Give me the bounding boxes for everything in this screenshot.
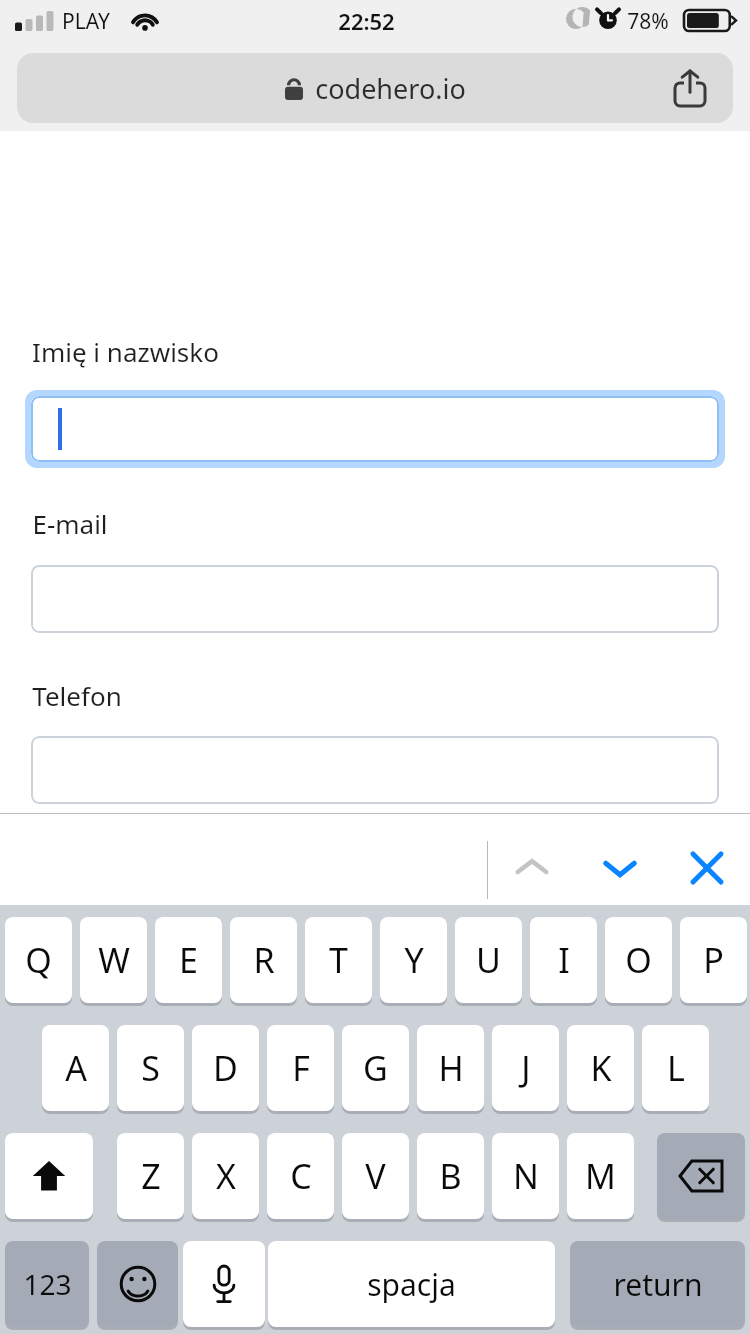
button[interactable]: G (342, 1025, 409, 1111)
staticText: Q (25, 937, 52, 983)
button[interactable]: spacja (268, 1241, 555, 1327)
staticText: Imię i nazwisko (32, 334, 219, 369)
staticText: I (558, 937, 570, 983)
staticText: L (667, 1045, 685, 1091)
button[interactable]: P (680, 917, 747, 1003)
button[interactable]: Emoji (97, 1241, 178, 1327)
button[interactable] (31, 565, 719, 633)
button[interactable] (31, 736, 719, 804)
button[interactable]: Next field (586, 834, 654, 902)
staticText: C (290, 1153, 312, 1199)
staticText: Z (141, 1153, 161, 1199)
staticText: 78% (627, 7, 669, 36)
button[interactable]: U (455, 917, 522, 1003)
button[interactable]: S (117, 1025, 184, 1111)
staticText: 123 (23, 1265, 72, 1303)
staticText: K (590, 1045, 612, 1091)
button[interactable] (31, 908, 719, 976)
button[interactable]: I (530, 917, 597, 1003)
staticText: R (253, 937, 275, 983)
staticText: F (292, 1045, 310, 1091)
staticText: 22:52 (338, 6, 395, 36)
button[interactable]: X (192, 1133, 259, 1219)
staticText: codehero.io (315, 70, 466, 107)
staticText: PLAY (62, 7, 110, 36)
button[interactable]: C (267, 1133, 334, 1219)
button[interactable]: W (80, 917, 147, 1003)
staticText: O (625, 937, 652, 983)
button[interactable]: A (42, 1025, 109, 1111)
button[interactable]: M (567, 1133, 634, 1219)
button[interactable]: Y (380, 917, 447, 1003)
button[interactable]: V (342, 1133, 409, 1219)
button[interactable]: T (305, 917, 372, 1003)
staticText: W (98, 937, 130, 983)
staticText: P (703, 937, 724, 983)
staticText: Telefon (32, 678, 122, 713)
staticText: return (613, 1264, 703, 1305)
staticText: V (365, 1153, 386, 1199)
button[interactable]: Dictation (183, 1241, 265, 1327)
button[interactable]: L (642, 1025, 709, 1111)
button[interactable]: O (605, 917, 672, 1003)
button[interactable]: K (567, 1025, 634, 1111)
button[interactable]: Share (659, 57, 721, 119)
staticText: B (439, 1153, 462, 1199)
staticText: E (179, 937, 198, 983)
button[interactable]: H (417, 1025, 484, 1111)
staticText: D (213, 1045, 238, 1091)
button[interactable]: B (417, 1133, 484, 1219)
staticText: A (65, 1045, 87, 1091)
button[interactable]: Z (117, 1133, 184, 1219)
staticText: N (513, 1153, 539, 1199)
staticText: M (585, 1153, 616, 1199)
button[interactable]: Q (5, 917, 72, 1003)
button[interactable]: Dismiss keyboard (673, 834, 741, 902)
staticText: T (329, 937, 348, 983)
staticText: E-mail (32, 506, 108, 541)
button[interactable]: R (230, 917, 297, 1003)
button[interactable]: E (155, 917, 222, 1003)
button[interactable]: Backspace (657, 1133, 745, 1219)
button[interactable]: F (267, 1025, 334, 1111)
staticText: U (476, 937, 501, 983)
button[interactable]: Shift (5, 1133, 93, 1219)
staticText: G (363, 1045, 388, 1091)
button[interactable]: codehero.io (17, 53, 733, 123)
button[interactable]: Previous field (498, 834, 566, 902)
button[interactable]: J (492, 1025, 559, 1111)
staticText: J (521, 1045, 531, 1091)
staticText: X (216, 1153, 236, 1199)
button[interactable]: 123 (5, 1241, 89, 1327)
button[interactable]: D (192, 1025, 259, 1111)
staticText: S (141, 1045, 160, 1091)
staticText: Y (404, 937, 424, 983)
staticText: H (438, 1045, 464, 1091)
button[interactable]: N (492, 1133, 559, 1219)
button[interactable]: return (570, 1241, 745, 1327)
staticText: spacja (367, 1264, 456, 1305)
button[interactable] (25, 390, 725, 468)
